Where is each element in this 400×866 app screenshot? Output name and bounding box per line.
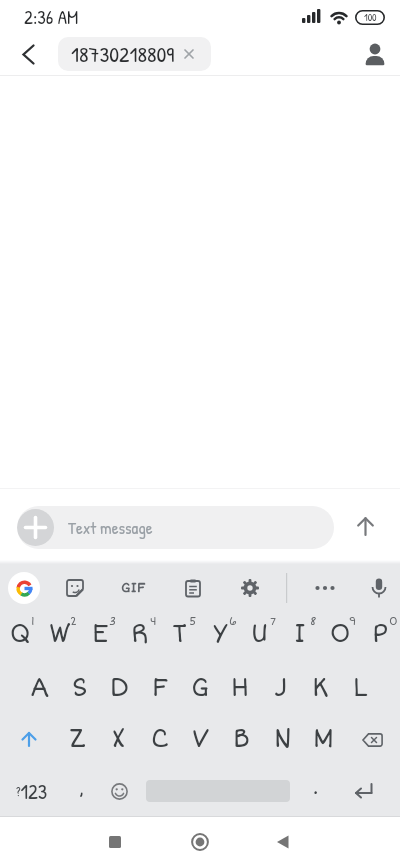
button[interactable]: C (139, 714, 180, 765)
staticText: 7 (270, 615, 277, 629)
button[interactable]: O (320, 612, 360, 663)
button[interactable]: A (20, 663, 60, 714)
staticText: T (172, 619, 188, 650)
button[interactable]: N (262, 714, 303, 765)
staticText: V (192, 724, 210, 755)
button[interactable] (309, 572, 341, 604)
staticText: 5 (189, 615, 197, 629)
button[interactable] (99, 826, 131, 858)
staticText: W (49, 619, 71, 650)
staticText: R (131, 619, 149, 650)
button[interactable] (234, 572, 266, 604)
staticText: L (353, 673, 368, 704)
staticText: E (92, 619, 109, 650)
staticText: 0 (389, 615, 398, 629)
button[interactable]: U (240, 612, 280, 663)
staticText: N (274, 724, 292, 755)
button[interactable] (177, 572, 209, 604)
button[interactable]: K (300, 663, 340, 714)
staticText: O (330, 619, 351, 650)
staticText: Text message (68, 516, 153, 539)
button[interactable] (59, 572, 91, 604)
staticText: Q (10, 619, 31, 650)
button[interactable]: D (100, 663, 140, 714)
button[interactable]: H (220, 663, 260, 714)
button[interactable]: X (98, 714, 139, 765)
button[interactable] (101, 771, 137, 811)
button[interactable]: T (160, 612, 200, 663)
staticText: 1 (31, 615, 35, 629)
button[interactable]: W (40, 612, 80, 663)
staticText: . (313, 769, 319, 801)
staticText: B (233, 724, 250, 755)
button[interactable]: Text message (17, 506, 334, 549)
staticText: F (152, 673, 168, 704)
staticText: ?123 (16, 777, 48, 805)
button[interactable]: Q (0, 612, 40, 663)
button[interactable]: V (180, 714, 221, 765)
staticText: G (191, 673, 209, 704)
button[interactable]: G (180, 663, 220, 714)
button[interactable] (339, 771, 387, 811)
button[interactable]: L (340, 663, 380, 714)
staticText: 18730218809 (71, 39, 175, 69)
staticText: J (274, 673, 287, 704)
button[interactable]: , (64, 771, 98, 811)
staticText: M (313, 724, 334, 755)
staticText: 9 (349, 615, 357, 629)
button[interactable]: Z (57, 714, 98, 765)
button[interactable] (344, 714, 400, 765)
button[interactable]: Y (200, 612, 240, 663)
button[interactable]: M (303, 714, 344, 765)
button[interactable]: ?123 (8, 771, 56, 811)
button[interactable]: . (298, 771, 334, 811)
staticText: 3 (109, 615, 117, 629)
staticText: K (312, 673, 329, 704)
staticText: D (110, 673, 130, 704)
staticText: U (251, 619, 269, 650)
button[interactable]: S (60, 663, 100, 714)
button[interactable]: B (221, 714, 262, 765)
button[interactable] (8, 572, 40, 604)
staticText: X (112, 724, 125, 755)
staticText: 4 (150, 615, 157, 629)
button[interactable]: GIF (117, 572, 149, 604)
staticText: A (30, 673, 50, 704)
button[interactable] (358, 37, 392, 71)
button[interactable] (348, 507, 382, 541)
button[interactable] (0, 714, 57, 765)
staticText: I (294, 619, 306, 650)
button[interactable] (184, 826, 216, 858)
staticText: 6 (229, 615, 237, 629)
staticText: P (372, 619, 389, 650)
staticText: 2:36 AM (24, 4, 79, 30)
button[interactable] (363, 572, 395, 604)
staticText: GIF (121, 580, 146, 596)
button[interactable] (267, 826, 299, 858)
staticText: S (72, 673, 88, 704)
staticText: H (231, 673, 249, 704)
button[interactable]: E (80, 612, 120, 663)
button[interactable]: P (360, 612, 400, 663)
button[interactable]: J (260, 663, 300, 714)
button[interactable]: 18730218809 (58, 37, 211, 71)
button[interactable] (12, 38, 44, 70)
staticText: Z (69, 724, 86, 755)
staticText: 100 (364, 11, 377, 25)
button[interactable]: R (120, 612, 160, 663)
button[interactable]: F (140, 663, 180, 714)
staticText: 2 (70, 615, 77, 629)
staticText: 8 (310, 615, 317, 629)
staticText: C (151, 724, 169, 755)
staticText: , (79, 770, 84, 802)
button[interactable]: I (280, 612, 320, 663)
staticText: Y (213, 619, 228, 650)
